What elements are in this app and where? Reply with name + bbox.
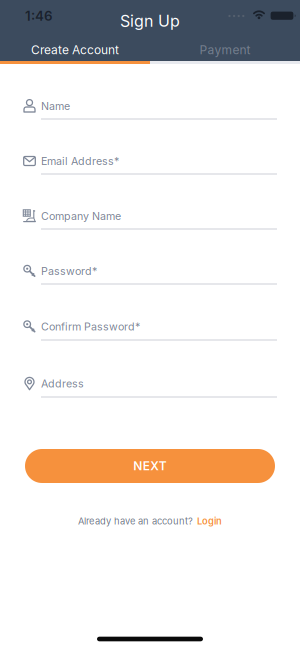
button[interactable]: Confirm Password* <box>0 306 300 346</box>
staticText: Name <box>41 100 70 112</box>
button[interactable]: Company Name <box>0 196 300 236</box>
staticText: NEXT <box>133 459 167 473</box>
staticText: Already have an account? <box>78 515 193 526</box>
button[interactable]: Email Address* <box>0 141 300 181</box>
button[interactable]: Payment <box>150 39 300 61</box>
staticText: Sign Up <box>120 12 180 30</box>
button[interactable]: Address <box>0 363 300 403</box>
staticText: Login <box>197 515 222 526</box>
staticText: 1:46 <box>25 8 53 24</box>
button[interactable]: Password* <box>0 251 300 291</box>
staticText: Create Account <box>31 43 119 57</box>
staticText: Address <box>41 377 84 390</box>
button[interactable]: Create Account <box>0 39 150 61</box>
staticText: Confirm Password* <box>41 320 140 333</box>
staticText: Password* <box>41 265 97 277</box>
staticText: Email Address* <box>41 155 119 167</box>
staticText: Company Name <box>41 210 121 222</box>
button[interactable]: Login <box>197 515 222 526</box>
button[interactable]: NEXT <box>25 449 275 483</box>
button[interactable]: Name <box>0 86 300 126</box>
staticText: Payment <box>199 43 250 57</box>
